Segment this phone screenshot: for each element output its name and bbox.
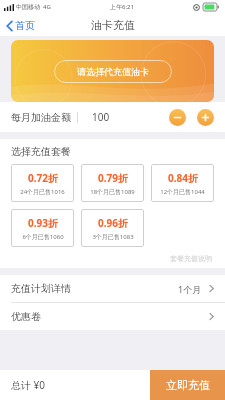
button[interactable]: 减少金额 xyxy=(169,109,186,126)
staticText: 中国移动 xyxy=(16,3,40,11)
staticText: 请选择代充值油卡 xyxy=(77,66,149,77)
button[interactable]: 首页 xyxy=(0,16,41,35)
staticText: 充值计划详情 xyxy=(11,282,71,295)
staticText: 油卡充值 xyxy=(91,18,135,32)
button[interactable]: 增加金额 xyxy=(197,109,214,126)
staticText: 总计 ¥0 xyxy=(11,378,46,392)
staticText: 0.72折 xyxy=(28,171,58,185)
staticText: 立即充值 xyxy=(166,378,210,392)
staticText: 选择充值套餐 xyxy=(11,145,71,158)
staticText: 18个月已售1089 xyxy=(90,188,135,196)
button[interactable]: 请选择代充值油卡 xyxy=(11,40,214,102)
button[interactable]: 充值计划详情 xyxy=(0,275,225,302)
staticText: 首页 xyxy=(15,19,35,32)
staticText: 4G xyxy=(43,3,51,11)
button[interactable]: 套餐充值说明 xyxy=(168,252,214,265)
staticText: 0.84折 xyxy=(168,171,198,185)
staticText: 0.93折 xyxy=(28,216,58,230)
staticText: 优惠卷 xyxy=(11,310,41,323)
button[interactable]: 0.84折 xyxy=(151,164,214,202)
button[interactable]: 0.93折 xyxy=(11,209,74,247)
staticText: 12个月已售1044 xyxy=(160,188,205,196)
staticText: 0.79折 xyxy=(98,171,128,185)
staticText: 100 xyxy=(92,110,110,124)
button[interactable]: 优惠卷 xyxy=(0,303,225,330)
button[interactable]: 0.96折 xyxy=(81,209,144,247)
staticText: 0.96折 xyxy=(98,216,128,230)
staticText: 6个月已售1060 xyxy=(22,233,64,241)
button[interactable]: 立即充值 xyxy=(150,370,225,400)
button[interactable]: 0.79折 xyxy=(81,164,144,202)
staticText: 1个月 xyxy=(178,283,202,295)
button[interactable]: 0.72折 xyxy=(11,164,74,202)
staticText: 上午6:21 xyxy=(110,3,134,11)
button[interactable]: 请选择代充值油卡 xyxy=(54,60,172,83)
staticText: 每月加油金额 xyxy=(11,111,71,124)
staticText: 3个月已售1083 xyxy=(92,233,134,241)
staticText: 24个月已售1016 xyxy=(20,188,65,196)
